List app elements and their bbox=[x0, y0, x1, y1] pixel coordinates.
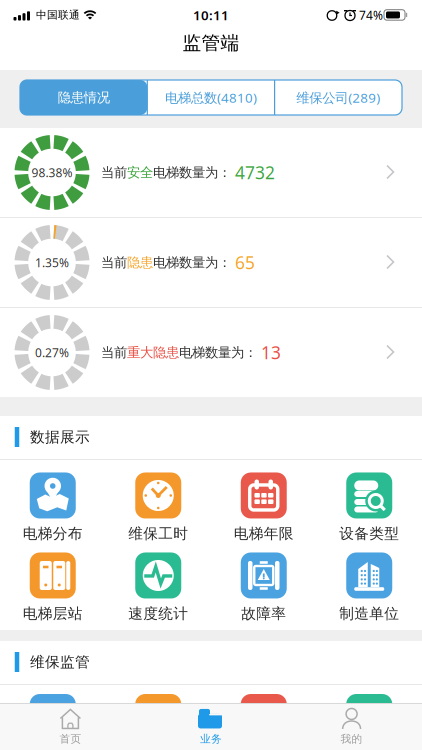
staticText: 当前 bbox=[101, 344, 127, 361]
staticText: 数据展示 bbox=[30, 428, 90, 446]
button[interactable]: 维保监管功能四 bbox=[346, 694, 392, 740]
button[interactable]: 业务 bbox=[141, 703, 281, 749]
staticText: 电梯数量为： bbox=[153, 164, 231, 181]
staticText: 我的 bbox=[341, 732, 363, 745]
staticText: 电梯数量为： bbox=[179, 344, 257, 361]
button[interactable]: 电梯分布 bbox=[0, 467, 105, 547]
staticText: 维保工时 bbox=[128, 524, 188, 542]
staticText: 隐患情况 bbox=[58, 89, 110, 106]
staticText: 电梯数量为： bbox=[153, 254, 231, 271]
staticText: 速度统计 bbox=[128, 604, 188, 622]
staticText: 重大隐患 bbox=[127, 344, 179, 361]
button[interactable]: 电梯总数(4810) bbox=[147, 80, 275, 115]
staticText: 中国联通 bbox=[36, 8, 80, 21]
button[interactable]: 1.35% bbox=[0, 218, 422, 307]
staticText: 13 bbox=[261, 341, 281, 364]
staticText: 制造单位 bbox=[339, 604, 399, 622]
staticText: 隐患 bbox=[127, 254, 153, 271]
button[interactable]: 速度统计 bbox=[105, 547, 211, 627]
staticText: 监管端 bbox=[182, 31, 239, 54]
staticText: 当前 bbox=[101, 164, 127, 181]
staticText: 维保公司(289) bbox=[296, 89, 380, 106]
button[interactable]: 制造单位 bbox=[316, 547, 422, 627]
button[interactable]: 维保工时 bbox=[105, 467, 211, 547]
button[interactable]: 维保公司(289) bbox=[275, 80, 402, 115]
staticText: 维保监管 bbox=[30, 653, 90, 671]
button[interactable]: 隐患情况 bbox=[20, 80, 147, 115]
button[interactable]: 我的 bbox=[281, 703, 422, 749]
button[interactable]: 设备类型 bbox=[316, 467, 422, 547]
staticText: 电梯年限 bbox=[234, 524, 294, 542]
staticText: 安全 bbox=[127, 164, 153, 181]
staticText: 74% bbox=[359, 7, 383, 23]
button[interactable]: 98.38% bbox=[0, 128, 422, 217]
staticText: 首页 bbox=[59, 732, 81, 745]
button[interactable]: 维保监管功能一 bbox=[30, 694, 76, 740]
button[interactable]: 首页 bbox=[0, 703, 141, 749]
staticText: 故障率 bbox=[241, 604, 286, 622]
staticText: 65 bbox=[235, 251, 255, 274]
staticText: 当前 bbox=[101, 254, 127, 271]
staticText: 电梯总数(4810) bbox=[165, 89, 257, 106]
staticText: 10:11 bbox=[193, 6, 229, 24]
staticText: 0.27% bbox=[35, 344, 69, 360]
button[interactable]: 故障率 bbox=[211, 547, 316, 627]
staticText: 设备类型 bbox=[339, 524, 399, 542]
staticText: 1.35% bbox=[35, 254, 69, 270]
staticText: 4732 bbox=[235, 161, 275, 184]
staticText: 98.38% bbox=[31, 164, 72, 180]
button[interactable]: 维保监管功能二 bbox=[135, 694, 181, 740]
button[interactable]: 维保监管功能三 bbox=[241, 694, 287, 740]
staticText: 电梯层站 bbox=[23, 604, 83, 622]
staticText: 电梯分布 bbox=[23, 524, 83, 542]
button[interactable]: 0.27% bbox=[0, 308, 422, 397]
button[interactable]: 电梯年限 bbox=[211, 467, 316, 547]
staticText: 业务 bbox=[200, 732, 222, 745]
button[interactable]: 电梯层站 bbox=[0, 547, 105, 627]
